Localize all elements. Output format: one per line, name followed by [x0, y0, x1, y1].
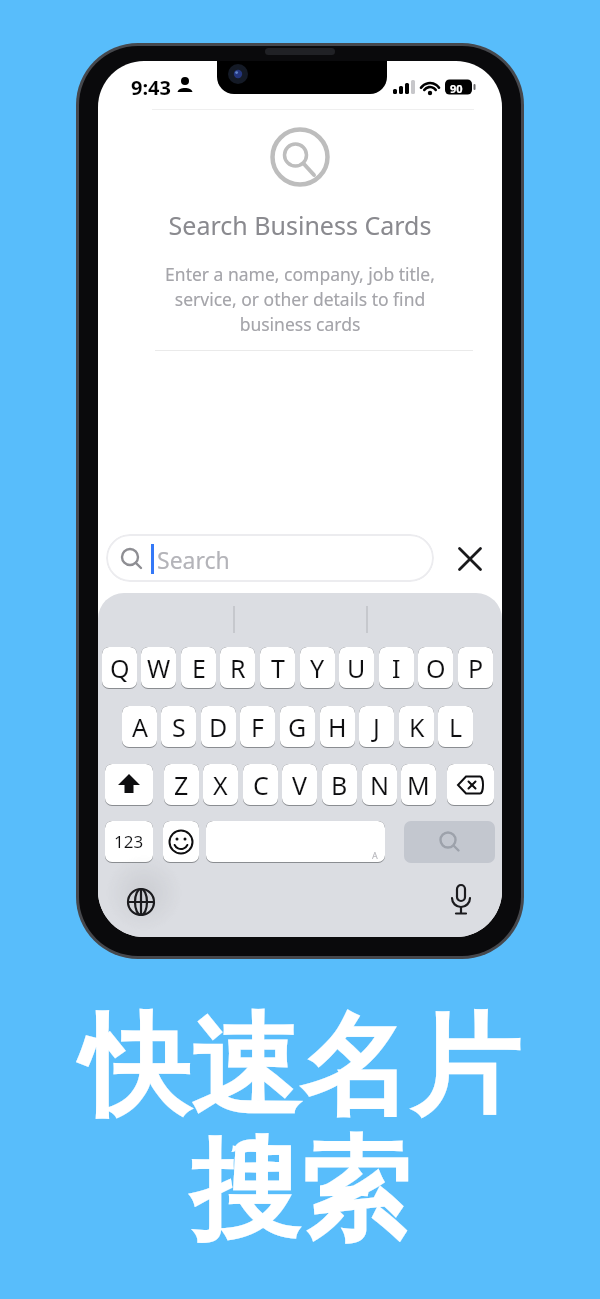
button[interactable]: X — [203, 764, 238, 806]
button[interactable] — [105, 764, 153, 806]
button[interactable]: S — [161, 706, 196, 748]
staticText: 90 — [450, 81, 463, 96]
staticText: B — [331, 768, 348, 802]
button[interactable]: 123 — [105, 821, 153, 863]
button[interactable]: K — [399, 706, 434, 748]
staticText: Q — [110, 651, 130, 685]
staticText: X — [213, 768, 228, 802]
button[interactable]: H — [320, 706, 355, 748]
staticText: Z — [174, 768, 189, 802]
button[interactable]: Z — [164, 764, 199, 806]
button[interactable]: C — [243, 764, 278, 806]
button[interactable]: P — [458, 647, 493, 689]
staticText: U — [347, 651, 366, 685]
staticText: P — [468, 651, 484, 685]
button[interactable]: W — [141, 647, 176, 689]
button[interactable]: F — [240, 706, 275, 748]
button[interactable] — [456, 545, 484, 573]
button[interactable]: L — [438, 706, 473, 748]
staticText: L — [449, 710, 463, 744]
button[interactable]: R — [220, 647, 255, 689]
staticText: Enter a name, company, job title, servic… — [98, 262, 502, 336]
button[interactable] — [163, 821, 199, 863]
button[interactable] — [268, 125, 332, 189]
button[interactable] — [450, 885, 472, 919]
button[interactable]: V — [282, 764, 317, 806]
button[interactable]: M — [401, 764, 436, 806]
button[interactable]: D — [201, 706, 236, 748]
staticText: 搜索 — [0, 1122, 600, 1261]
staticText: S — [172, 710, 186, 744]
button[interactable]: A — [206, 821, 385, 863]
button[interactable] — [404, 821, 495, 863]
staticText: N — [370, 768, 390, 802]
button[interactable]: E — [181, 647, 216, 689]
staticText: C — [253, 768, 269, 802]
button[interactable]: Y — [300, 647, 335, 689]
staticText: V — [292, 768, 308, 802]
button[interactable]: B — [322, 764, 357, 806]
staticText: F — [251, 710, 264, 744]
staticText: A — [372, 849, 378, 861]
button[interactable]: Search — [106, 534, 434, 582]
button[interactable]: J — [359, 706, 394, 748]
staticText: G — [288, 710, 307, 744]
staticText: 快速名片 — [0, 998, 600, 1137]
staticText: M — [407, 768, 430, 802]
staticText: D — [209, 710, 228, 744]
button[interactable] — [447, 764, 494, 806]
button[interactable]: Q — [102, 647, 137, 689]
button[interactable] — [126, 887, 156, 917]
staticText: Search — [157, 544, 230, 575]
button[interactable]: I — [379, 647, 414, 689]
button[interactable]: O — [418, 647, 453, 689]
button[interactable]: N — [362, 764, 397, 806]
button[interactable]: T — [260, 647, 295, 689]
staticText: E — [192, 651, 206, 685]
staticText: Y — [310, 651, 325, 685]
button[interactable]: G — [280, 706, 315, 748]
staticText: 123 — [114, 830, 144, 853]
staticText: A — [132, 710, 148, 744]
staticText: H — [328, 710, 347, 744]
staticText: J — [373, 710, 380, 744]
staticText: R — [230, 651, 246, 685]
staticText: K — [409, 710, 425, 744]
staticText: I — [392, 651, 401, 685]
staticText: T — [271, 651, 285, 685]
staticText: Search Business Cards — [98, 208, 502, 242]
button[interactable]: A — [122, 706, 157, 748]
staticText: W — [147, 651, 171, 685]
staticText: O — [426, 651, 446, 685]
staticText: 9:43 — [131, 74, 171, 101]
button[interactable]: U — [339, 647, 374, 689]
